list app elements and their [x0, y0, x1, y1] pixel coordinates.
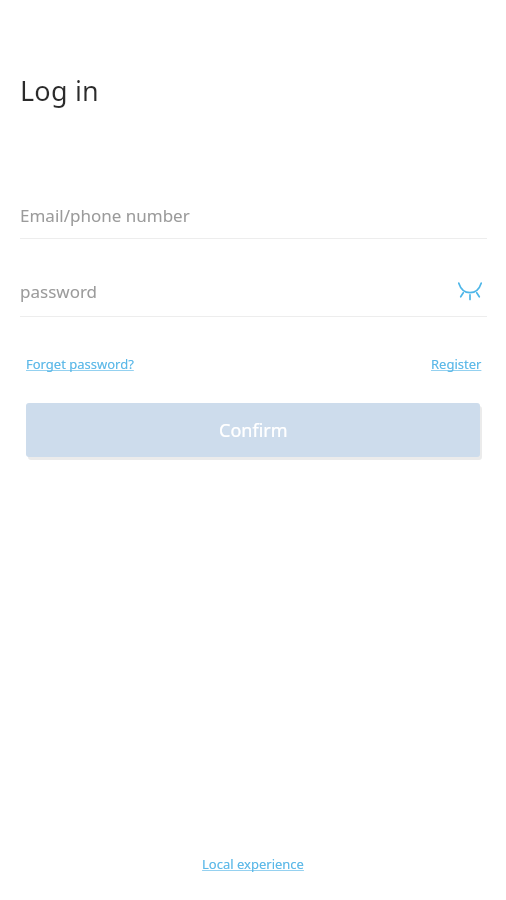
staticText: Log in — [20, 72, 99, 109]
staticText: Register — [431, 355, 482, 373]
staticText: Email/phone number — [20, 204, 190, 227]
staticText: Confirm — [219, 418, 288, 443]
button[interactable]: password — [20, 267, 487, 315]
button[interactable]: Forget password? — [26, 350, 134, 378]
button[interactable]: Register — [418, 350, 482, 378]
button[interactable]: Confirm — [26, 403, 480, 457]
button[interactable]: Local experience — [202, 850, 304, 878]
staticText: Local experience — [202, 855, 304, 873]
button[interactable]: Show password — [450, 268, 490, 312]
staticText: password — [20, 280, 98, 303]
staticText: Forget password? — [26, 355, 134, 373]
button[interactable]: Email/phone number — [20, 192, 487, 238]
